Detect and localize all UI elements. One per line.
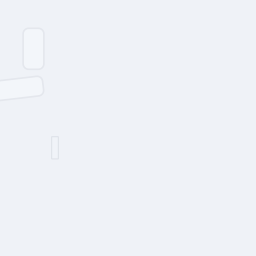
button[interactable]: Card xyxy=(23,28,44,69)
button[interactable]: Bar xyxy=(0,81,43,100)
